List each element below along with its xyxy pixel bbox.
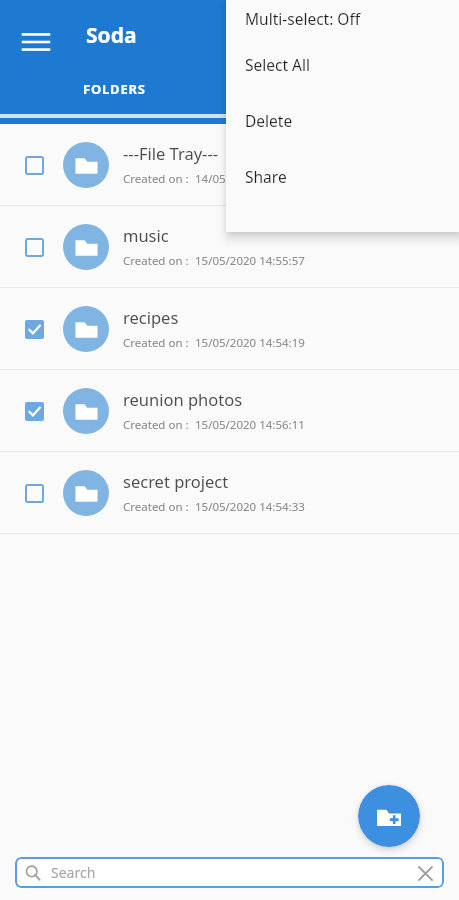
- button[interactable]: Clear search: [410, 858, 440, 888]
- staticText: recipes: [123, 306, 179, 328]
- staticText: Created on :: [123, 499, 195, 515]
- staticText: Created on :: [123, 253, 195, 269]
- staticText: 15/05/2020 14:56:11: [195, 417, 305, 433]
- button[interactable]: Search: [15, 857, 444, 888]
- staticText: Created on :: [123, 171, 195, 187]
- button[interactable]: FOLDERS: [0, 80, 229, 98]
- staticText: 15/05/2020 14:55:57: [195, 253, 305, 269]
- staticText: Search: [51, 863, 96, 882]
- button[interactable]: Not selected: [19, 478, 49, 508]
- button[interactable]: Not selected: [0, 452, 459, 533]
- button[interactable]: Create new folder: [358, 785, 420, 847]
- button[interactable]: Open navigation drawer: [14, 20, 58, 64]
- button[interactable]: Selected: [19, 314, 49, 344]
- button[interactable]: Selected: [19, 396, 49, 426]
- staticText: ---File Tray---: [123, 142, 219, 164]
- staticText: music: [123, 224, 169, 246]
- staticText: reunion photos: [123, 388, 243, 410]
- staticText: FOLDERS: [83, 80, 146, 98]
- button[interactable]: Selected: [0, 288, 459, 369]
- button[interactable]: Not selected: [19, 150, 49, 180]
- staticText: Soda: [86, 21, 137, 50]
- staticText: Created on :: [123, 417, 195, 433]
- staticText: 15/05/2020 14:54:19: [195, 335, 305, 351]
- button[interactable]: Not selected: [19, 232, 49, 262]
- button[interactable]: Multi-select: Off: [226, 0, 459, 36]
- staticText: secret project: [123, 470, 229, 492]
- staticText: Delete: [245, 110, 293, 131]
- staticText: Multi-select: Off: [245, 8, 361, 29]
- button[interactable]: Not selected: [0, 206, 459, 287]
- button[interactable]: Selected: [0, 370, 459, 451]
- staticText: Created on :: [123, 335, 195, 351]
- staticText: Share: [245, 166, 287, 187]
- button[interactable]: Select All: [226, 36, 459, 92]
- button[interactable]: Delete: [226, 92, 459, 148]
- button[interactable]: Not selected: [0, 124, 459, 205]
- staticText: Select All: [245, 54, 310, 75]
- staticText: 14/05/2020 09:21:07: [195, 171, 305, 187]
- button[interactable]: Share: [226, 148, 459, 204]
- staticText: 15/05/2020 14:54:33: [195, 499, 305, 515]
